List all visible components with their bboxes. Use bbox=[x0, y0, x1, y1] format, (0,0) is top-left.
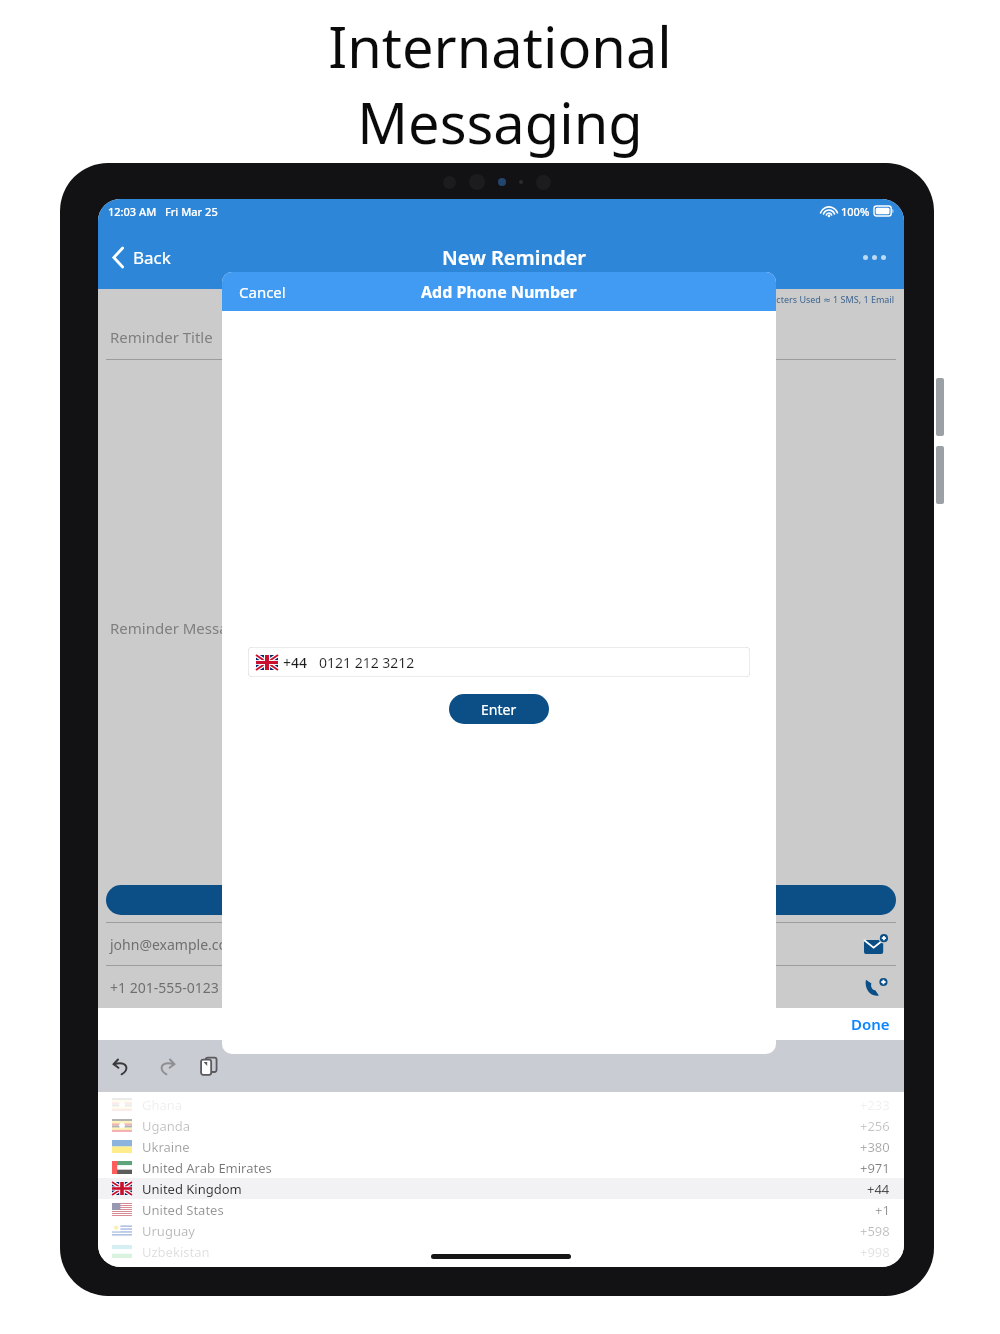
button[interactable]: john@example.com bbox=[98, 923, 904, 965]
button[interactable]: Undo bbox=[106, 1051, 138, 1081]
staticText: +44 bbox=[867, 1180, 890, 1198]
staticText: +1 bbox=[875, 1201, 890, 1219]
button[interactable]: Cancel bbox=[222, 273, 303, 311]
staticText: +1 201-555-0123 bbox=[110, 978, 219, 997]
staticText: International bbox=[328, 8, 672, 84]
button[interactable]: Done bbox=[837, 1008, 904, 1040]
button[interactable]: United Kingdom bbox=[98, 1178, 904, 1199]
button[interactable]: Redo bbox=[150, 1051, 182, 1081]
staticText: Enter bbox=[481, 700, 517, 719]
button[interactable]: +44 bbox=[248, 647, 750, 677]
staticText: 0 Characters Used ≈ 1 SMS, 1 Email bbox=[744, 293, 894, 305]
staticText: United States bbox=[142, 1201, 224, 1219]
staticText: +380 bbox=[860, 1138, 890, 1156]
staticText: john@example.com bbox=[110, 935, 241, 954]
staticText: United Kingdom bbox=[142, 1180, 242, 1198]
staticText: Reminder Title bbox=[110, 327, 213, 347]
button[interactable]: Add email recipient bbox=[860, 930, 892, 958]
button[interactable] bbox=[106, 885, 896, 915]
button[interactable]: Paste bbox=[194, 1050, 224, 1082]
staticText: +44 bbox=[283, 653, 308, 672]
staticText: Uruguay bbox=[142, 1222, 195, 1240]
staticText: Uzbekistan bbox=[142, 1243, 210, 1261]
staticText: Messaging bbox=[357, 84, 643, 160]
staticText: 100% bbox=[841, 204, 870, 219]
button[interactable]: United Arab Emirates bbox=[98, 1157, 904, 1178]
button[interactable]: Uruguay bbox=[98, 1220, 904, 1241]
button[interactable]: +1 201-555-0123 bbox=[98, 966, 904, 1008]
staticText: +971 bbox=[860, 1159, 890, 1177]
staticText: 12:03 AM Fri Mar 25 bbox=[108, 204, 218, 219]
button[interactable]: More options bbox=[853, 245, 896, 270]
button[interactable]: Uganda bbox=[98, 1115, 904, 1136]
staticText: +998 bbox=[860, 1243, 890, 1261]
staticText: Ukraine bbox=[142, 1138, 190, 1156]
button[interactable]: Ukraine bbox=[98, 1136, 904, 1157]
button[interactable]: Back bbox=[106, 238, 177, 277]
staticText: 0121 212 3212 bbox=[319, 653, 415, 672]
staticText: United Arab Emirates bbox=[142, 1159, 272, 1177]
staticText: New Reminder bbox=[442, 244, 587, 271]
staticText: Back bbox=[133, 246, 171, 269]
staticText: Ghana bbox=[142, 1096, 183, 1114]
staticText: +233 bbox=[860, 1096, 890, 1114]
staticText: Add Phone Number bbox=[421, 281, 577, 303]
button[interactable]: Add phone recipient bbox=[860, 973, 892, 1001]
button[interactable]: Uzbekistan bbox=[98, 1241, 904, 1262]
button[interactable]: United States bbox=[98, 1199, 904, 1220]
staticText: +598 bbox=[860, 1222, 890, 1240]
button[interactable]: Enter bbox=[449, 694, 549, 724]
staticText: Uganda bbox=[142, 1117, 191, 1135]
staticText: +256 bbox=[860, 1117, 890, 1135]
staticText: Reminder Message bbox=[110, 618, 246, 638]
